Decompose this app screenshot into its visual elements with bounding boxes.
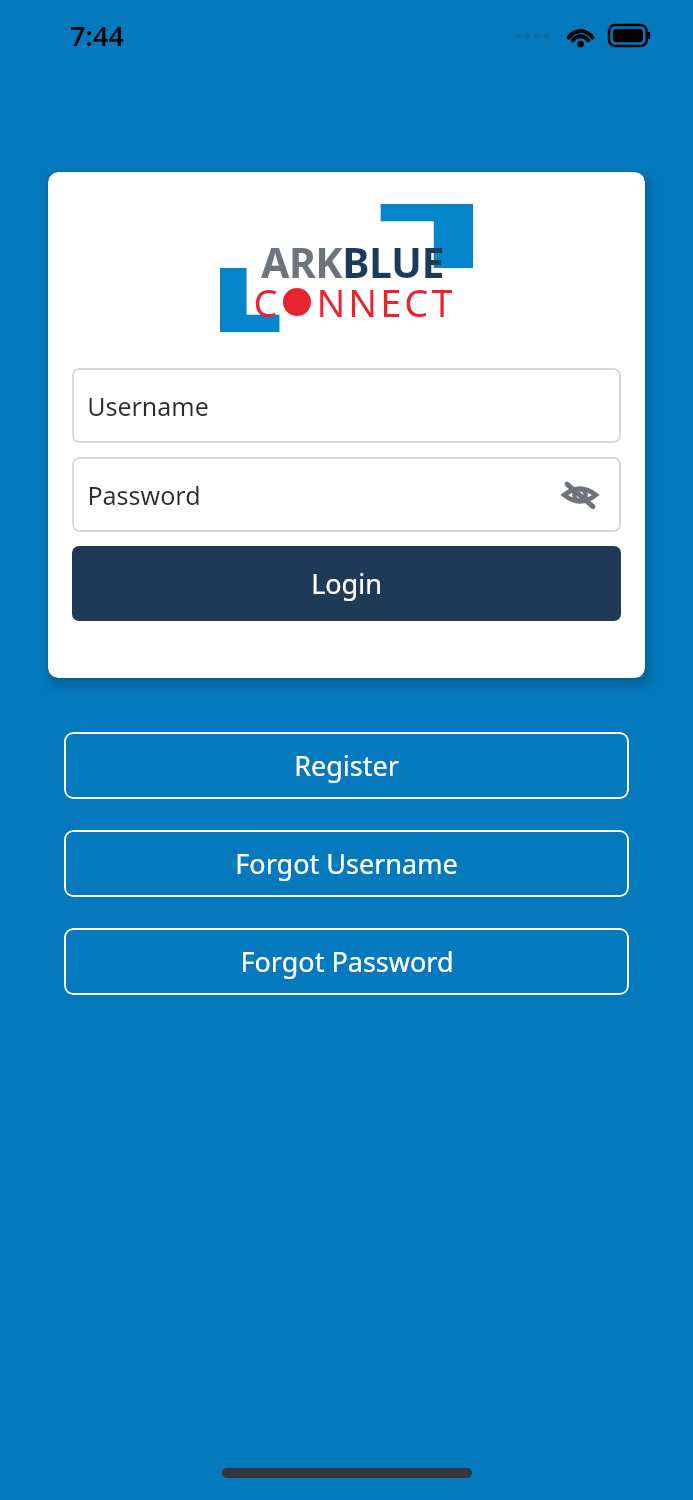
staticText: BLUE — [342, 234, 444, 290]
staticText: Register — [294, 747, 399, 784]
staticText: Forgot Password — [240, 943, 454, 980]
button[interactable]: Register — [64, 732, 629, 799]
button[interactable]: Login — [72, 546, 621, 621]
button[interactable]: Forgot Password — [64, 928, 629, 995]
button[interactable]: Password — [72, 457, 621, 532]
staticText: NNECT — [316, 276, 456, 328]
staticText: Forgot Username — [235, 845, 458, 882]
button[interactable]: Forgot Username — [64, 830, 629, 897]
staticText: Password — [87, 478, 201, 512]
staticText: Username — [87, 389, 209, 423]
staticText: 7:44 — [70, 17, 124, 54]
staticText: ARK — [261, 234, 342, 290]
staticText: Login — [311, 565, 382, 602]
button[interactable]: Show password — [557, 472, 603, 518]
button[interactable]: Username — [72, 368, 621, 443]
staticText: C — [253, 276, 281, 328]
